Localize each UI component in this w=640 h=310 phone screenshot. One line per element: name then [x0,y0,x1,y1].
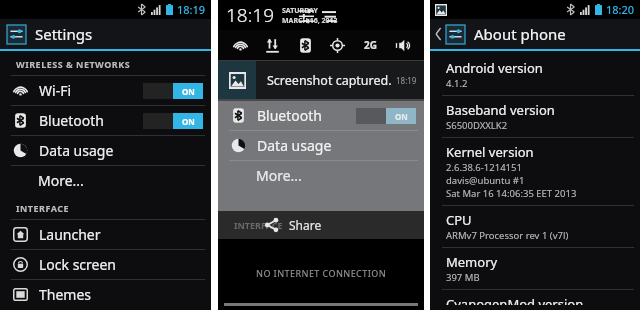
staticText: 18:19 [396,75,417,86]
staticText: About phone [474,24,566,44]
staticText: Memory [446,253,498,271]
button[interactable]: Sound [391,34,413,56]
staticText: More... [38,171,84,190]
button[interactable]: Data usage [0,136,211,165]
button[interactable]: More... [0,166,211,195]
staticText: SATURDAY [282,6,318,16]
button[interactable]: 2G network [359,34,381,56]
button[interactable]: Quick settings [299,8,314,23]
staticText: 397 MB [446,271,480,284]
button[interactable]: Bluetooth [294,34,316,56]
staticText: CyanogenMod version [446,295,584,305]
button[interactable]: Android version [430,54,640,95]
staticText: Sat Mar 16 14:06:35 EET 2013 [446,187,577,200]
staticText: Wi-Fi [39,81,72,100]
staticText: 18:19 [226,2,275,28]
staticText: MARCH 16, 2013 [282,16,338,26]
button[interactable]: ON [143,83,203,99]
button[interactable]: Memory [430,248,640,289]
staticText: INTERFACE [16,202,70,214]
staticText: More... [256,166,302,185]
staticText: 2G [364,38,377,52]
button[interactable]: Lock screen [0,250,211,279]
button[interactable]: Baseband version [430,96,640,137]
staticText: Themes [39,285,92,304]
staticText: Baseband version [446,101,555,119]
staticText: ON [395,111,408,122]
staticText: davis@ubuntu #1 [446,174,525,187]
staticText: Share [289,217,322,233]
staticText: Screenshot captured. [267,72,392,89]
staticText: WIRELESS & NETWORKS [16,58,131,70]
staticText: Data usage [257,136,332,155]
button[interactable]: Share [265,217,322,233]
button[interactable]: Back [430,19,640,49]
button[interactable]: Data [261,34,283,56]
staticText: Bluetooth [39,111,104,130]
staticText: 2.6.38.6-1214151 [446,161,522,174]
staticText: Kernel version [446,143,534,161]
staticText: ON [182,86,195,97]
staticText: INTERFACE [234,219,283,231]
staticText: Settings [35,24,93,44]
staticText: NO INTERNET CONNECTION [256,267,387,279]
button[interactable]: CPU [430,206,640,247]
staticText: 18:19 [177,2,206,17]
button[interactable]: Kernel version [430,138,640,205]
button[interactable]: GPS [326,34,348,56]
button[interactable]: Bluetooth [0,106,211,135]
button[interactable]: Wi-Fi [0,76,211,105]
staticText: ARMv7 Processor rev 1 (v7l) [446,229,569,242]
staticText: S6500DXXLK2 [446,119,508,132]
button[interactable]: Launcher [0,220,211,249]
staticText: ON [182,116,195,127]
staticText: Launcher [39,225,101,244]
staticText: 18:20 [606,2,635,17]
staticText: Android version [446,59,543,77]
staticText: CPU [446,211,472,229]
staticText: 4.1.2 [446,77,468,90]
staticText: Bluetooth [257,106,322,125]
staticText: Lock screen [39,255,117,274]
button[interactable]: Settings [0,19,211,49]
button[interactable]: Wi-Fi [229,34,251,56]
button[interactable]: CyanogenMod version [430,290,640,310]
button[interactable]: Screenshot captured. [218,61,424,99]
button[interactable]: Clear all notifications [322,9,336,23]
button[interactable]: ON [143,113,203,129]
button[interactable]: Themes [0,280,211,309]
staticText: Data usage [39,141,114,160]
